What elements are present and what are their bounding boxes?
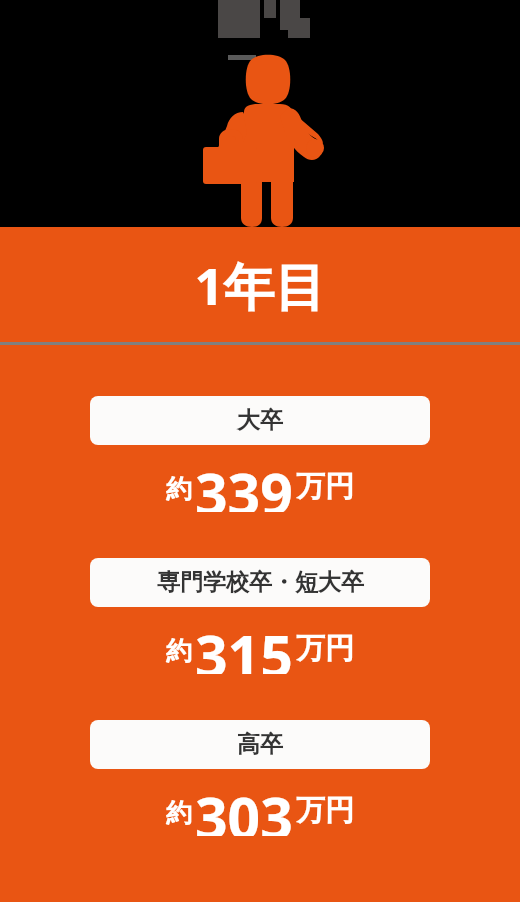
- staticText: 1年目: [194, 250, 326, 320]
- staticText: 約: [166, 473, 192, 506]
- staticText: 専門学校卒・短大卒: [157, 568, 364, 597]
- button[interactable]: 専門学校卒・短大卒: [90, 558, 430, 607]
- staticText: 303: [195, 778, 293, 836]
- staticText: 約: [166, 635, 192, 668]
- staticText: 万円: [296, 630, 354, 667]
- staticText: 大卒: [237, 406, 283, 435]
- staticText: 339: [195, 454, 293, 512]
- staticText: 約: [166, 797, 192, 830]
- button[interactable]: 大卒: [90, 396, 430, 445]
- button[interactable]: 高卒: [90, 720, 430, 769]
- staticText: 万円: [296, 468, 354, 505]
- staticText: 315: [195, 616, 293, 674]
- other: Worker with briefcase illustration: [0, 0, 520, 227]
- staticText: 高卒: [237, 730, 283, 759]
- staticText: 万円: [296, 792, 354, 829]
